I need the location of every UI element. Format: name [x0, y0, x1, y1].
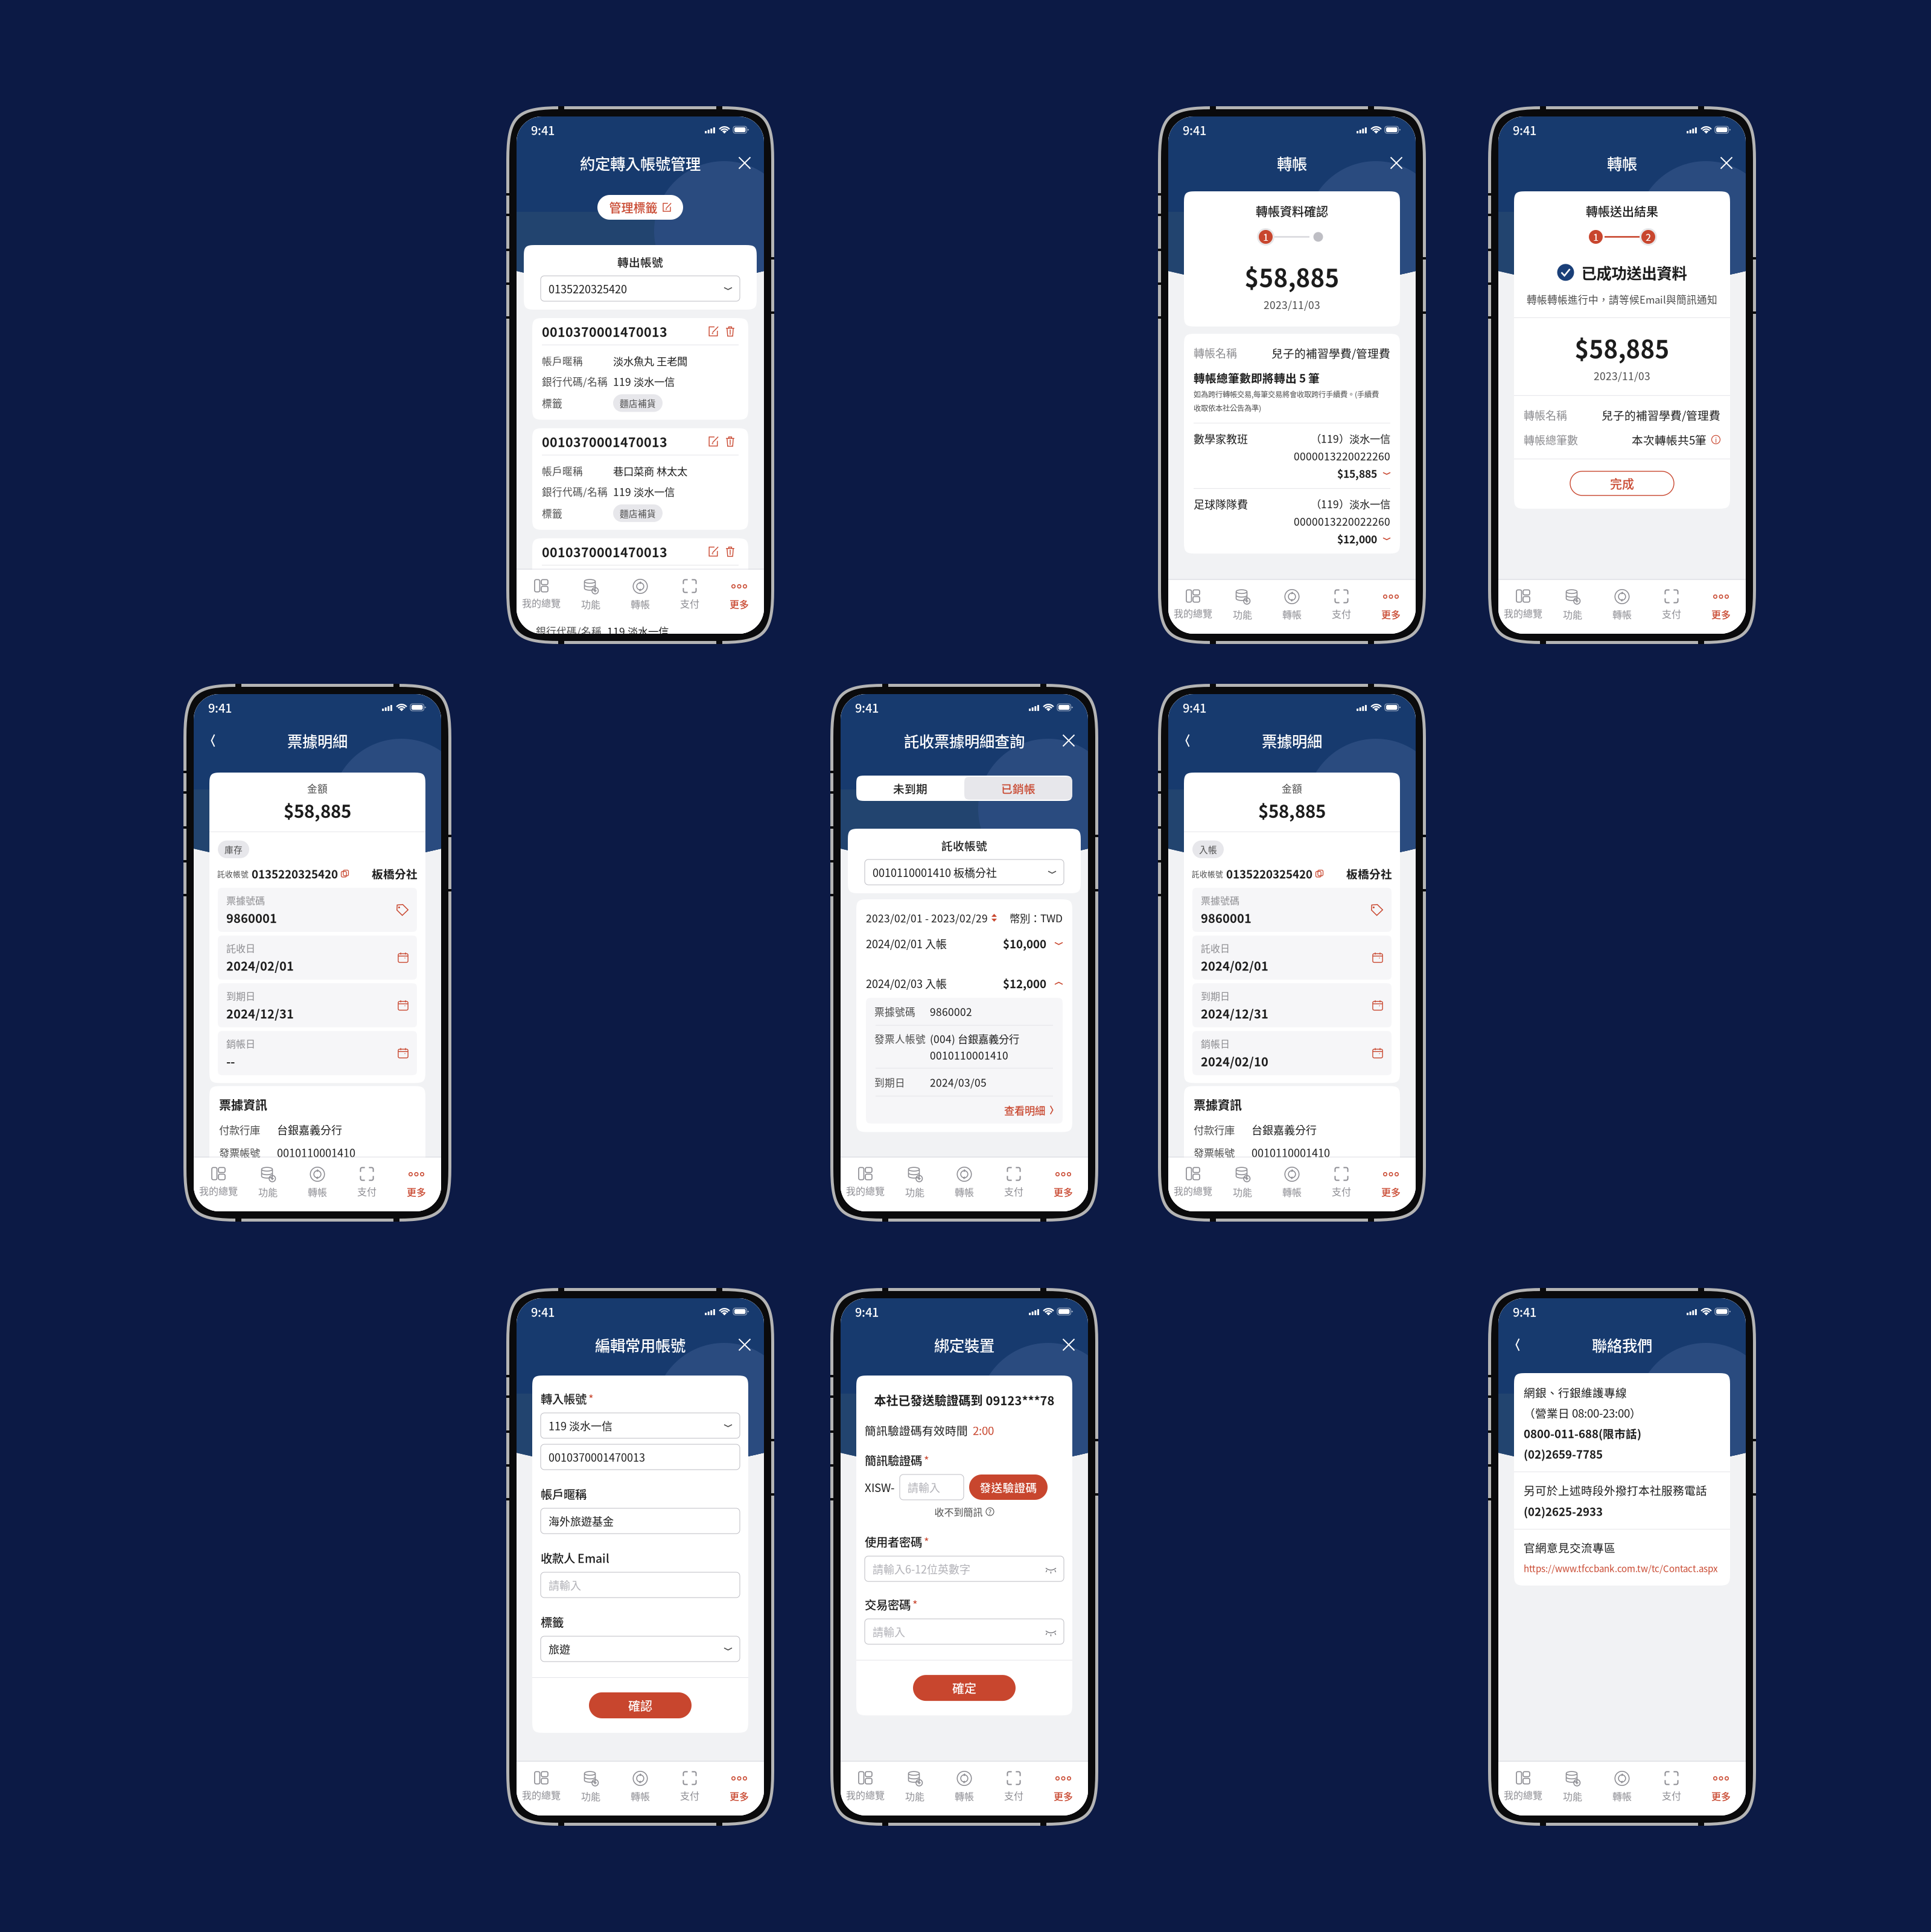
button[interactable]: 我的總覽	[1168, 1158, 1218, 1211]
staticText: 本次轉帳共5筆	[1632, 431, 1707, 448]
button[interactable]: 我的總覽	[841, 1762, 890, 1816]
staticText: 更多	[1711, 607, 1731, 621]
button[interactable]: Close	[1384, 151, 1408, 175]
button[interactable]: 請輸入	[865, 1619, 1064, 1644]
button[interactable]: 更多	[1039, 1158, 1088, 1211]
button[interactable]: Edit	[705, 323, 722, 340]
staticText: 轉帳	[1612, 607, 1632, 621]
staticText: 聯絡我們	[1592, 1334, 1652, 1356]
button[interactable]: 我的總覽	[841, 1158, 890, 1211]
button[interactable]: 更多	[1696, 1762, 1746, 1816]
button[interactable]: 轉帳	[1267, 1158, 1317, 1211]
button[interactable]: 我的總覽	[517, 1762, 566, 1816]
button[interactable]: 0010370001470013	[541, 1444, 740, 1470]
button[interactable]: 請輸入6-12位英數字	[865, 1556, 1064, 1581]
button[interactable]: 2024/02/03 入帳	[856, 958, 1072, 998]
button[interactable]: 轉帳	[1597, 580, 1647, 634]
button[interactable]: 轉帳	[940, 1762, 989, 1816]
button[interactable]: Back	[201, 728, 225, 753]
button[interactable]: 轉帳	[616, 570, 665, 623]
button[interactable]: 更多	[714, 570, 764, 623]
button[interactable]: 完成	[1570, 471, 1674, 495]
button[interactable]: 支付	[1317, 580, 1366, 634]
staticText: 另可於上述時段外撥打本社服務電話	[1524, 1482, 1707, 1498]
staticText: 我的總覽	[846, 1788, 885, 1802]
button[interactable]: Edit	[705, 433, 722, 450]
button[interactable]: 已銷帳	[964, 777, 1072, 800]
staticText: $12,000	[1337, 531, 1377, 546]
button[interactable]: 功能	[566, 570, 616, 623]
staticText: 金額	[307, 781, 328, 796]
button[interactable]: 旅遊	[541, 1636, 740, 1662]
button[interactable]: Back	[1506, 1333, 1530, 1357]
button[interactable]: Delete	[722, 323, 739, 340]
staticText: 票據號碼	[1201, 893, 1239, 907]
button[interactable]: 功能	[1218, 580, 1267, 634]
button[interactable]: Delete	[722, 543, 739, 560]
button[interactable]: 119 淡水一信	[541, 1413, 740, 1438]
button[interactable]: 更多	[392, 1158, 441, 1211]
button[interactable]: Close	[733, 151, 757, 175]
button[interactable]: 我的總覽	[1498, 580, 1548, 634]
button[interactable]: 支付	[342, 1158, 392, 1211]
button[interactable]: 轉帳	[293, 1158, 342, 1211]
button[interactable]: 0135220325420	[541, 276, 740, 301]
button[interactable]: 功能	[1548, 1762, 1597, 1816]
button[interactable]: 未到期	[856, 777, 964, 800]
button[interactable]: 支付	[989, 1158, 1039, 1211]
button[interactable]: 我的總覽	[194, 1158, 243, 1211]
button[interactable]: 請輸入	[900, 1475, 964, 1500]
staticText: 確定	[952, 1679, 976, 1697]
staticText: 0135220325420	[252, 865, 338, 882]
button[interactable]: 海外旅遊基金	[541, 1508, 740, 1534]
button[interactable]: 轉帳	[940, 1158, 989, 1211]
button[interactable]: Delete	[722, 433, 739, 450]
button[interactable]: 2024/02/01 入帳	[856, 929, 1072, 958]
button[interactable]: 確定	[913, 1675, 1016, 1701]
button[interactable]: 支付	[1647, 580, 1696, 634]
button[interactable]: 功能	[1548, 580, 1597, 634]
staticText: $12,000	[1003, 975, 1046, 991]
button[interactable]: 更多	[1366, 1158, 1416, 1211]
button[interactable]: 我的總覽	[1498, 1762, 1548, 1816]
staticText: 轉帳	[955, 1789, 974, 1803]
button[interactable]: 支付	[665, 1762, 714, 1816]
button[interactable]: Edit	[705, 543, 722, 560]
button[interactable]: 我的總覽	[1168, 580, 1218, 634]
button[interactable]: 管理標籤	[597, 195, 683, 220]
button[interactable]: Close	[733, 1333, 757, 1357]
button[interactable]: 功能	[243, 1158, 293, 1211]
button[interactable]: 發送驗證碼	[969, 1475, 1048, 1500]
button[interactable]: 更多	[1696, 580, 1746, 634]
button[interactable]: 更多	[714, 1762, 764, 1816]
button[interactable]: 支付	[989, 1762, 1039, 1816]
button[interactable]: Close	[1057, 728, 1081, 753]
button[interactable]: 更多	[1366, 580, 1416, 634]
button[interactable]: 確認	[589, 1692, 692, 1718]
button[interactable]: 功能	[566, 1762, 616, 1816]
button[interactable]: 功能	[1218, 1158, 1267, 1211]
staticText: 轉帳	[1612, 1789, 1632, 1803]
button[interactable]: 轉帳	[1267, 580, 1317, 634]
button[interactable]: Back	[1175, 728, 1200, 753]
staticText: 更多	[407, 1185, 426, 1199]
button[interactable]: 更多	[1039, 1762, 1088, 1816]
staticText: 2023/11/03	[1594, 368, 1650, 383]
staticText: $58,885	[1245, 259, 1339, 294]
button[interactable]: 轉帳	[616, 1762, 665, 1816]
button[interactable]: 查看明細	[866, 1096, 1063, 1124]
button[interactable]: 支付	[1317, 1158, 1366, 1211]
button[interactable]: 支付	[665, 570, 714, 623]
button[interactable]: 轉帳	[1597, 1762, 1647, 1816]
button[interactable]: 支付	[1647, 1762, 1696, 1816]
button[interactable]: Close	[1714, 151, 1739, 175]
button[interactable]: Close	[1057, 1333, 1081, 1357]
button[interactable]: 功能	[890, 1158, 940, 1211]
button[interactable]: 0010110001410 板橋分社	[865, 859, 1064, 885]
button[interactable]: 我的總覽	[517, 570, 566, 623]
button[interactable]: https://www.tfccbank.com.tw/tc/Contact.a…	[1524, 1562, 1718, 1575]
staticText: 海外旅遊基金	[549, 1513, 614, 1529]
button[interactable]: 請輸入	[541, 1572, 740, 1598]
button[interactable]: 功能	[890, 1762, 940, 1816]
staticText: 麵店補貨	[620, 507, 656, 520]
